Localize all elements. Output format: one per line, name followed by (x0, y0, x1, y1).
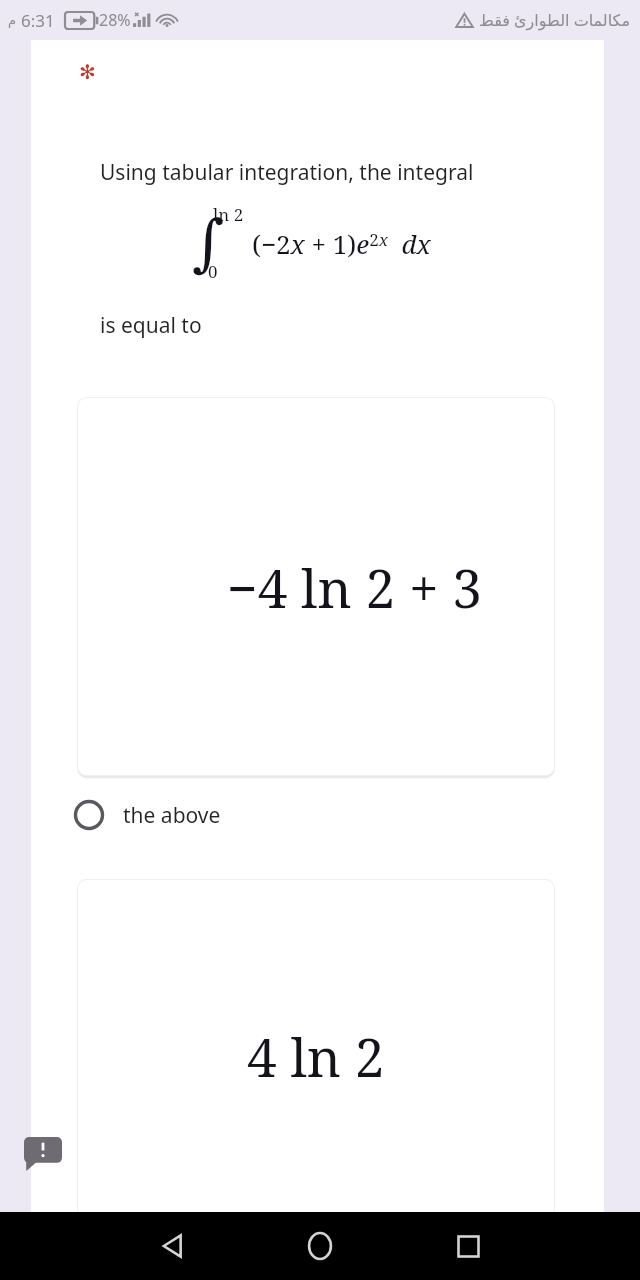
staticText: 0 (208, 260, 218, 283)
button[interactable]: Answer minus four ln two plus three (77, 397, 555, 776)
staticText: the above (123, 801, 221, 830)
staticText: 6:31 (21, 9, 55, 32)
staticText: ✻ (79, 60, 96, 83)
button[interactable]: the above (71, 792, 351, 838)
staticText: (−2x + 1)e2x dx (252, 226, 431, 261)
staticText: مكالمات الطوارئ فقط (479, 9, 630, 31)
button[interactable]: Recent apps (436, 1214, 500, 1278)
staticText: −4 ln 2 + 3 (227, 551, 482, 623)
button[interactable]: Answer four ln two (77, 879, 555, 1220)
staticText: is equal to (100, 311, 202, 340)
staticText: 4 ln 2 (247, 1020, 385, 1092)
button[interactable]: More information (24, 1137, 62, 1171)
button[interactable]: Back (140, 1214, 204, 1278)
staticText: 28% (99, 9, 131, 31)
staticText: م (8, 13, 17, 28)
button[interactable]: Home (288, 1214, 352, 1278)
staticText: ln 2 (213, 203, 244, 226)
staticText: ∫ (192, 206, 225, 278)
staticText: Using tabular integration, the integral (100, 158, 474, 187)
